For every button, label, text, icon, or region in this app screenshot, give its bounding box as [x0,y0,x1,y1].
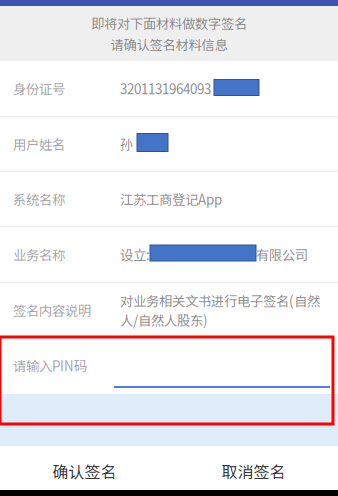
staticText: 请确认签名材料信息 [110,34,227,54]
button[interactable]: 取消签名 [169,452,338,490]
staticText: 用户姓名 [13,134,65,154]
staticText: 孙 [120,134,133,154]
staticText: 设立: [120,245,150,264]
staticText: 对业务相关文书进行电子签名(自然人/自然人股东) [120,291,320,329]
staticText: 确认签名 [52,459,116,483]
staticText: 请输入PIN码 [13,356,87,375]
staticText: 签名内容说明 [13,300,91,320]
staticText: 取消签名 [221,459,285,483]
button[interactable]: 确认签名 [0,452,169,490]
staticText: 业务名称 [13,245,65,264]
staticText: 3201131964093 [120,79,211,98]
staticText: 有限公司 [256,245,308,264]
staticText: 江苏工商登记App [120,189,222,209]
staticText: 即将对下面材料做数字签名 [91,13,247,32]
staticText: 身份证号 [13,79,65,98]
staticText: 系统名称 [13,189,65,209]
